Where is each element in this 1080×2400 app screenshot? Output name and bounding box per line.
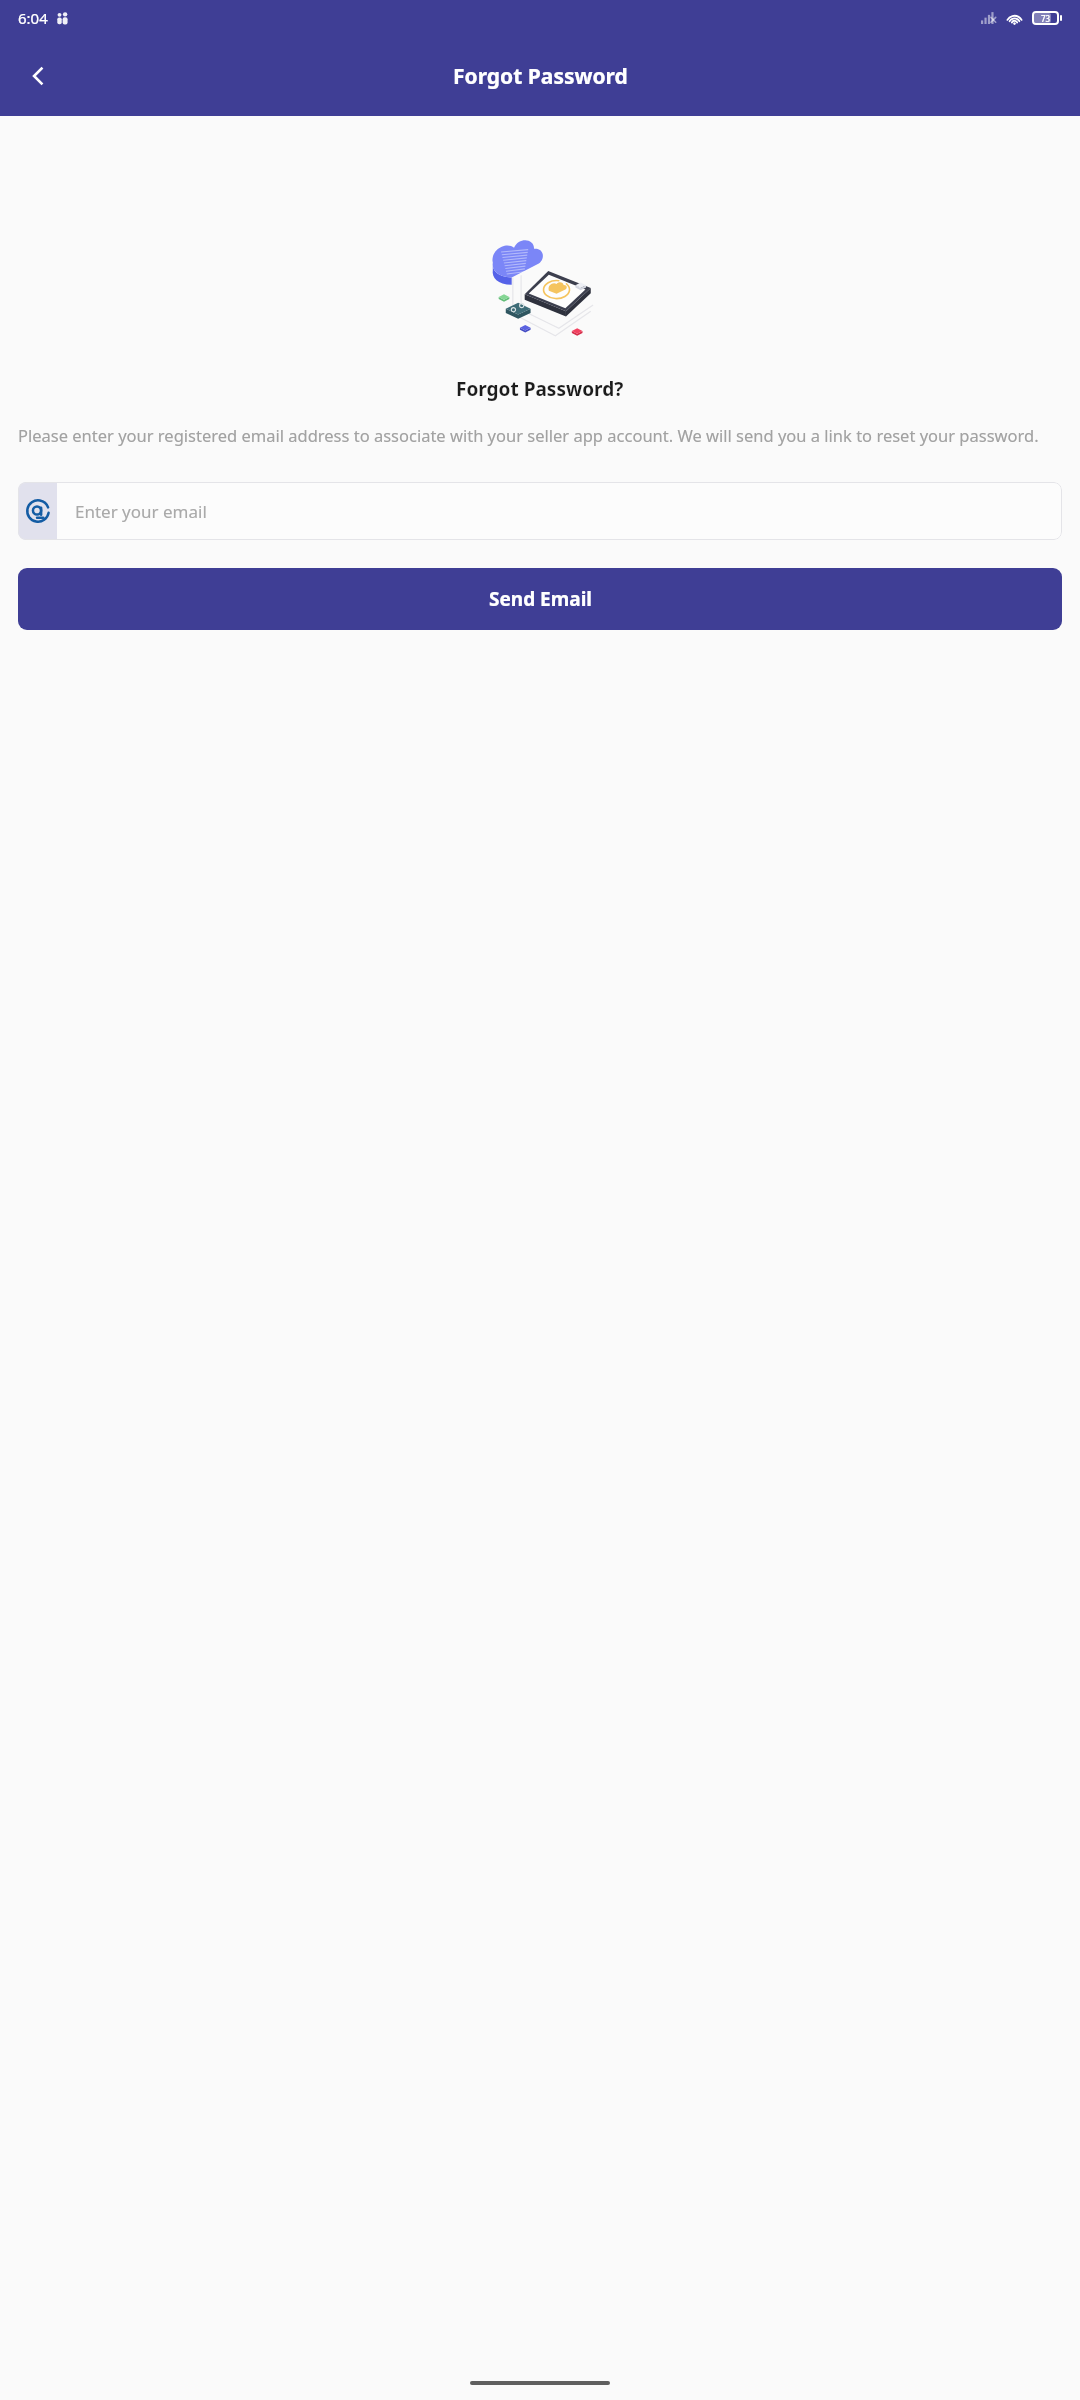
staticText: Enter your email [75, 500, 207, 523]
button[interactable]: Send Email [18, 568, 1062, 630]
staticText: 73 [1041, 13, 1051, 23]
staticText: 6:04 [18, 8, 48, 28]
staticText: Forgot Password? [456, 376, 624, 402]
staticText: Send Email [489, 586, 592, 612]
staticText: Forgot Password [453, 62, 628, 91]
staticText: Please enter your registered email addre… [18, 424, 1062, 446]
button[interactable]: Enter your email [18, 482, 1062, 540]
button[interactable]: Back [10, 48, 66, 104]
